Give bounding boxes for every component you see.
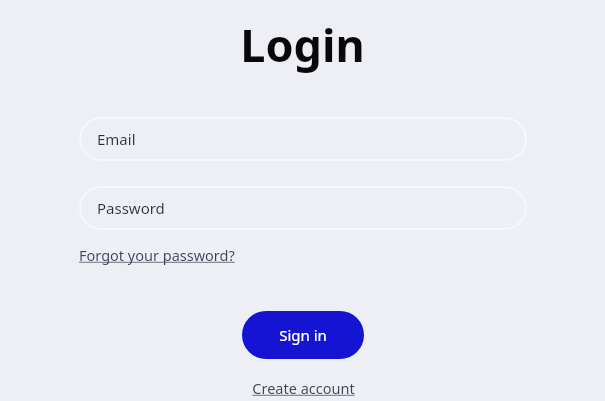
staticText: Email	[97, 129, 136, 149]
staticText: Forgot your password?	[79, 245, 235, 265]
staticText: Create account	[252, 378, 355, 398]
button[interactable]: Email	[79, 117, 527, 161]
button[interactable]: Create account	[252, 378, 355, 398]
staticText: Password	[97, 198, 165, 218]
staticText: Login	[240, 14, 365, 75]
button[interactable]: Password	[79, 186, 527, 230]
button[interactable]: Sign in	[242, 311, 364, 359]
button[interactable]: Forgot your password?	[79, 245, 235, 265]
staticText: Sign in	[279, 325, 327, 345]
